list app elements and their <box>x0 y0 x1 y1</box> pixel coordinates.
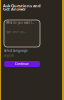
staticText: Continue <box>15 62 29 66</box>
staticText: Ask Questions and <box>3 3 41 8</box>
staticText: What do you want to know? <box>6 21 34 24</box>
staticText: English <box>4 54 14 57</box>
staticText: Select Language <box>4 49 28 52</box>
staticText: Type your question <box>6 30 26 33</box>
button[interactable]: Continue <box>4 61 40 67</box>
staticText: Get Answer <box>3 6 26 12</box>
